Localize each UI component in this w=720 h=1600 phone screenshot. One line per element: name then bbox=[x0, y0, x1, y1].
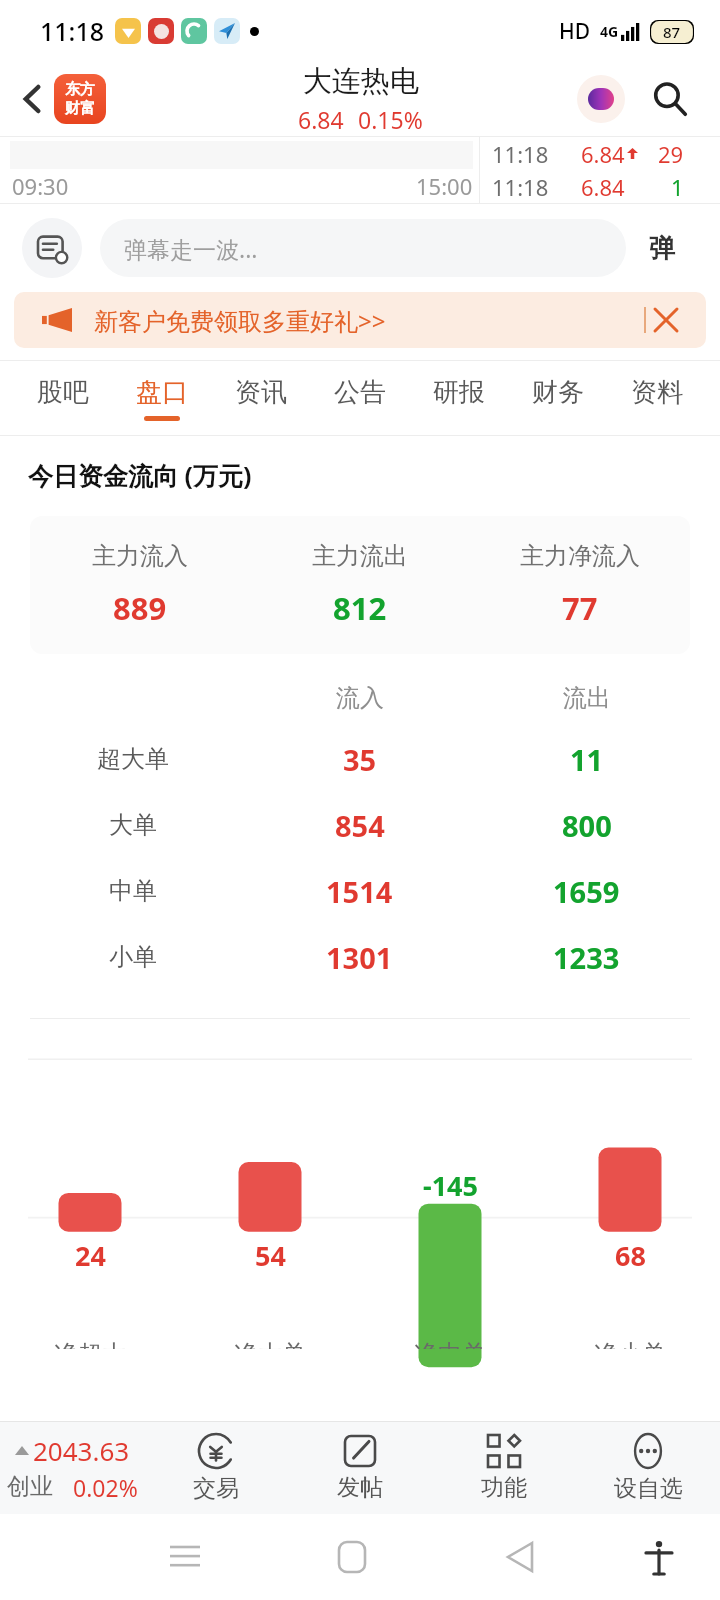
staticText: 812 bbox=[333, 587, 387, 629]
staticText: 77 bbox=[562, 587, 598, 629]
staticText: 资讯 bbox=[235, 376, 287, 409]
button[interactable]: Back bbox=[8, 74, 58, 124]
staticText: 29 bbox=[658, 139, 684, 169]
staticText: 11:18 bbox=[492, 172, 549, 202]
staticText: HD bbox=[559, 17, 591, 46]
staticText: 854 bbox=[335, 806, 385, 845]
staticText: 流入 bbox=[336, 683, 384, 713]
button[interactable]: 超大单 bbox=[20, 726, 700, 792]
staticText: 弹 bbox=[649, 232, 675, 265]
button[interactable]: -145 bbox=[360, 1019, 540, 1349]
button[interactable]: 盘口 bbox=[112, 361, 211, 435]
button[interactable]: 弹幕走一波... bbox=[100, 219, 626, 277]
button[interactable]: 09:30 bbox=[0, 137, 479, 203]
staticText: 11:18 bbox=[40, 14, 105, 48]
staticText: 6.84 bbox=[581, 172, 625, 202]
staticText: 净中单 bbox=[414, 1339, 486, 1349]
staticText: 今日资金流向 (万元) bbox=[28, 458, 252, 492]
staticText: 主力净流入 bbox=[520, 541, 640, 571]
button[interactable]: 交易 bbox=[144, 1422, 288, 1514]
button[interactable]: East Money bbox=[54, 74, 106, 124]
staticText: 财富 bbox=[65, 99, 95, 118]
staticText: 中单 bbox=[109, 876, 157, 906]
staticText: 大单 bbox=[109, 810, 157, 840]
staticText: 新客户免费领取多重好礼>> bbox=[94, 304, 386, 337]
staticText: 1301 bbox=[326, 938, 393, 977]
button[interactable]: 2043.63 bbox=[0, 1422, 144, 1514]
button[interactable]: Search bbox=[642, 71, 698, 127]
button[interactable]: 68 bbox=[540, 1019, 720, 1349]
staticText: 11 bbox=[570, 740, 604, 779]
button[interactable]: 功能 bbox=[432, 1422, 576, 1514]
button[interactable]: 研报 bbox=[409, 361, 508, 435]
staticText: 净超大 bbox=[54, 1339, 126, 1349]
staticText: 财务 bbox=[532, 376, 584, 409]
staticText: 功能 bbox=[481, 1473, 527, 1502]
button[interactable]: 中单 bbox=[20, 858, 700, 924]
staticText: 创业 bbox=[7, 1472, 53, 1501]
staticText: 发帖 bbox=[337, 1473, 383, 1502]
staticText: 研报 bbox=[433, 376, 485, 409]
staticText: 15:00 bbox=[416, 171, 473, 201]
staticText: 2043.63 bbox=[33, 1433, 130, 1468]
staticText: 净大单 bbox=[234, 1339, 306, 1349]
staticText: 东方 bbox=[65, 80, 95, 99]
staticText: 1233 bbox=[553, 938, 620, 977]
staticText: 公告 bbox=[334, 376, 386, 409]
staticText: 6.84 bbox=[581, 139, 625, 169]
button[interactable]: 财务 bbox=[508, 361, 607, 435]
staticText: 35 bbox=[343, 740, 377, 779]
staticText: 09:30 bbox=[12, 171, 69, 201]
staticText: 11:18 bbox=[492, 139, 549, 169]
button[interactable]: Notes bbox=[22, 218, 82, 278]
staticText: 24 bbox=[75, 1237, 106, 1274]
button[interactable]: 资料 bbox=[607, 361, 706, 435]
button[interactable]: 54 bbox=[180, 1019, 360, 1349]
staticText: 盘口 bbox=[136, 376, 188, 409]
staticText: 净小单 bbox=[594, 1339, 666, 1349]
staticText: 流出 bbox=[563, 683, 611, 713]
button[interactable]: 新客户免费领取多重好礼>> bbox=[14, 292, 706, 348]
staticText: 超大单 bbox=[97, 744, 169, 774]
button[interactable]: 资讯 bbox=[211, 361, 310, 435]
button[interactable]: AI assistant bbox=[574, 72, 628, 126]
staticText: 弹幕走一波... bbox=[124, 233, 258, 264]
button[interactable]: 主力流入 bbox=[30, 516, 690, 654]
button[interactable]: 大单 bbox=[20, 792, 700, 858]
staticText: 0.15% bbox=[358, 104, 423, 135]
staticText: 交易 bbox=[193, 1474, 239, 1503]
staticText: 小单 bbox=[109, 942, 157, 972]
staticText: 54 bbox=[255, 1237, 286, 1274]
button[interactable]: Danmu toggle bbox=[626, 219, 698, 277]
staticText: 大连热电 bbox=[303, 63, 419, 100]
staticText: 68 bbox=[615, 1237, 646, 1274]
staticText: 资料 bbox=[631, 376, 683, 409]
staticText: 设自选 bbox=[614, 1474, 683, 1503]
staticText: 1514 bbox=[326, 872, 393, 911]
button[interactable]: 24 bbox=[0, 1019, 180, 1349]
button[interactable]: 小单 bbox=[20, 924, 700, 990]
staticText: 1 bbox=[671, 172, 684, 202]
staticText: 4G bbox=[600, 22, 619, 41]
staticText: 6.84 bbox=[298, 104, 344, 135]
button[interactable]: Close bbox=[646, 300, 686, 340]
staticText: 主力流入 bbox=[92, 541, 188, 571]
button[interactable]: 发帖 bbox=[288, 1422, 432, 1514]
staticText: 股吧 bbox=[37, 376, 89, 409]
staticText: -145 bbox=[423, 1167, 478, 1204]
button[interactable]: 公告 bbox=[310, 361, 409, 435]
staticText: 87 bbox=[663, 22, 681, 42]
staticText: 0.02% bbox=[73, 1472, 138, 1503]
staticText: 889 bbox=[113, 587, 167, 629]
staticText: 1659 bbox=[553, 872, 620, 911]
button[interactable]: 股吧 bbox=[14, 361, 112, 435]
staticText: 800 bbox=[562, 806, 612, 845]
button[interactable]: 11:18 bbox=[480, 137, 720, 203]
staticText: 主力流出 bbox=[312, 541, 408, 571]
button[interactable]: 设自选 bbox=[576, 1422, 720, 1514]
